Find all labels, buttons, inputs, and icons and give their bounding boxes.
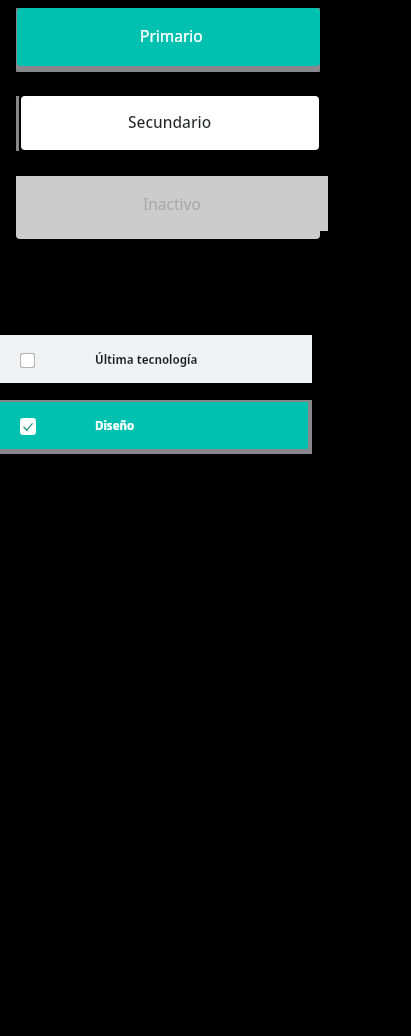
staticText: Secundario [128, 111, 212, 132]
button[interactable]: Última tecnología, not checked [0, 335, 312, 383]
button[interactable]: Inactivo [16, 176, 328, 231]
staticText: Primario [140, 25, 203, 46]
other: Diseño, checked [20, 418, 36, 435]
button[interactable]: Diseño, checked [0, 402, 308, 449]
staticText: Diseño [95, 418, 135, 434]
staticText: Última tecnología [95, 352, 198, 368]
button[interactable]: Secundario [21, 96, 319, 150]
other: Última tecnología, not checked [20, 353, 35, 368]
staticText: Inactivo [143, 193, 201, 214]
button[interactable]: Primario [17, 8, 320, 66]
